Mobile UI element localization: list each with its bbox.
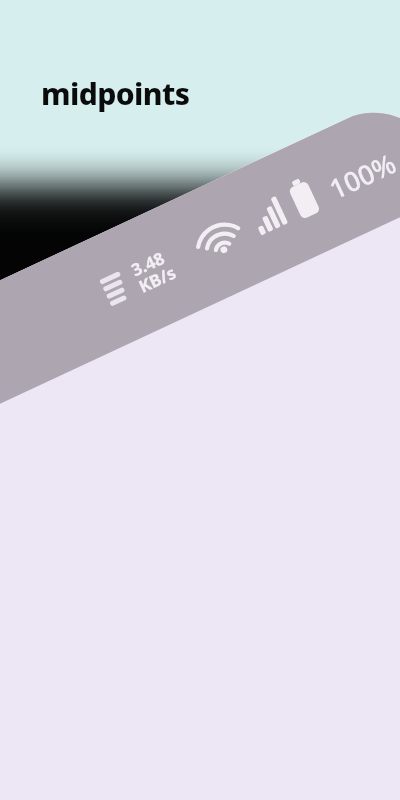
- button[interactable]: midpoints app preview: [0, 0, 400, 800]
- button[interactable]: Device screenshot preview: [0, 0, 400, 800]
